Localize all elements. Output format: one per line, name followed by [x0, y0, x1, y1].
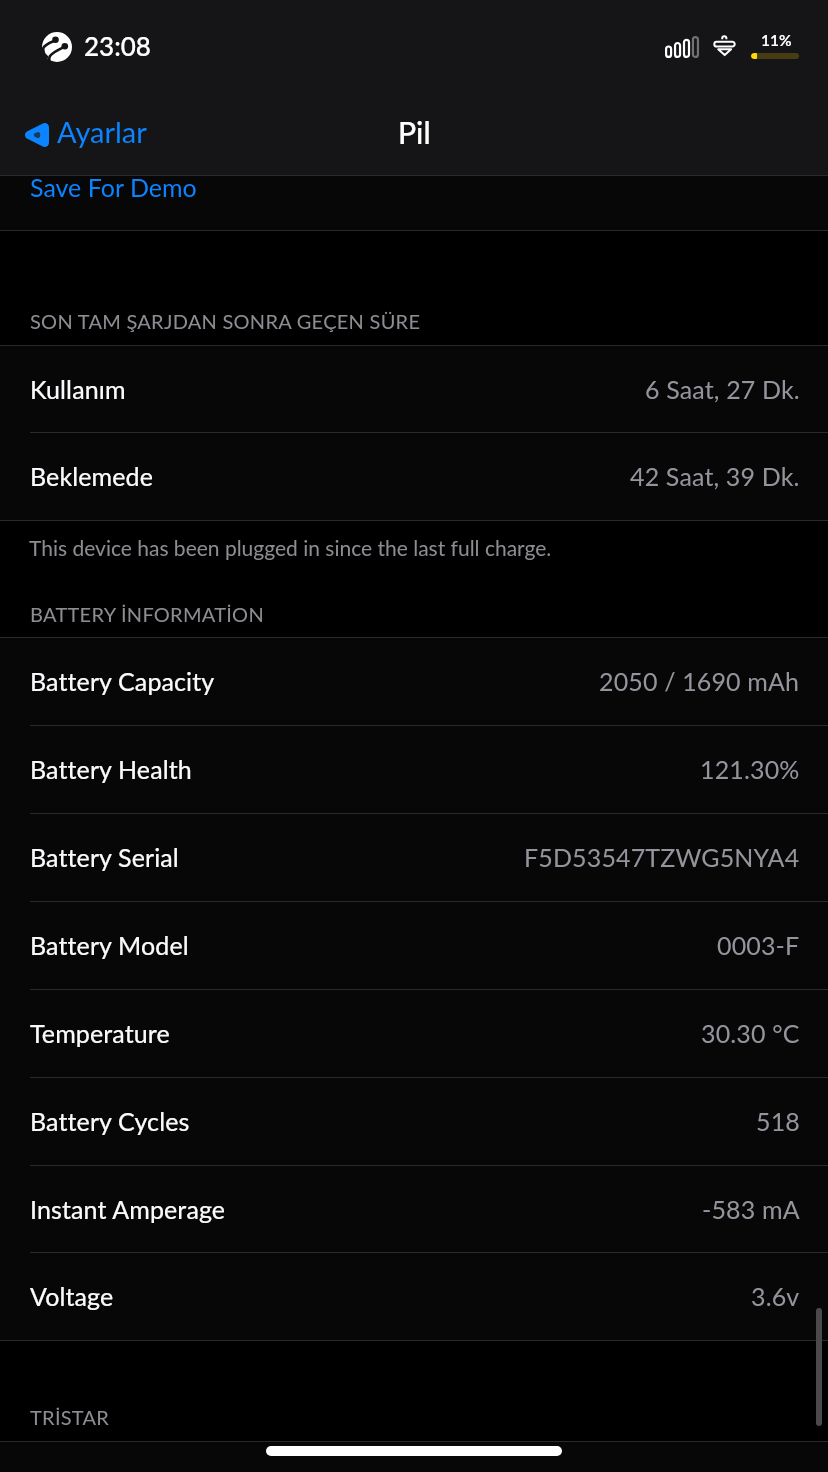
- staticText: 2050 / 1690 mAh: [599, 666, 800, 696]
- button[interactable]: Battery Serial: [0, 813, 828, 901]
- staticText: 3.6v: [751, 1281, 800, 1311]
- button[interactable]: Voltage: [0, 1252, 828, 1340]
- staticText: 6 Saat, 27 Dk.: [645, 374, 800, 404]
- other: Wi-Fi: [712, 34, 738, 60]
- staticText: Instant Amperage: [30, 1194, 226, 1224]
- button[interactable]: Back to Ayarlar: [22, 114, 147, 154]
- staticText: 23:08: [84, 30, 151, 61]
- staticText: Beklemede: [30, 461, 154, 491]
- button[interactable]: Battery Model: [0, 901, 828, 989]
- staticText: 0003-F: [717, 930, 800, 960]
- other: Carrier: [42, 32, 72, 62]
- button[interactable]: Battery Health: [0, 725, 828, 813]
- staticText: 121.30%: [700, 754, 800, 784]
- staticText: -583 mA: [702, 1194, 800, 1224]
- button[interactable]: Instant Amperage: [0, 1165, 828, 1252]
- staticText: 42 Saat, 39 Dk.: [630, 461, 800, 491]
- staticText: 11%: [761, 31, 792, 50]
- staticText: Battery Serial: [30, 842, 179, 872]
- staticText: Kullanım: [30, 374, 126, 404]
- button[interactable]: Temperature: [0, 989, 828, 1077]
- staticText: Ayarlar: [57, 114, 147, 149]
- staticText: This device has been plugged in since th…: [29, 535, 552, 560]
- staticText: BATTERY İNFORMATİON: [30, 602, 264, 626]
- staticText: Battery Health: [30, 754, 192, 784]
- button[interactable]: Kullanım: [0, 345, 828, 432]
- staticText: 30.30 °C: [701, 1018, 800, 1048]
- staticText: SON TAM ŞARJDAN SONRA GEÇEN SÜRE: [30, 309, 421, 333]
- staticText: Voltage: [30, 1281, 114, 1311]
- other: Battery 11 percent: [751, 53, 799, 59]
- staticText: Battery Model: [30, 930, 189, 960]
- staticText: Temperature: [30, 1018, 170, 1048]
- button[interactable]: Battery Cycles: [0, 1077, 828, 1165]
- staticText: Battery Capacity: [30, 666, 215, 696]
- button[interactable]: Battery Capacity: [0, 637, 828, 725]
- staticText: Save For Demo: [30, 172, 197, 202]
- button[interactable]: Save For Demo: [0, 176, 828, 230]
- other: Cellular signal: [665, 34, 703, 58]
- staticText: TRİSTAR: [30, 1405, 110, 1429]
- staticText: Battery Cycles: [30, 1106, 190, 1136]
- staticText: Pil: [398, 114, 431, 150]
- button[interactable]: Beklemede: [0, 432, 828, 520]
- staticText: 518: [756, 1106, 800, 1136]
- staticText: F5D53547TZWG5NYA4: [524, 842, 800, 872]
